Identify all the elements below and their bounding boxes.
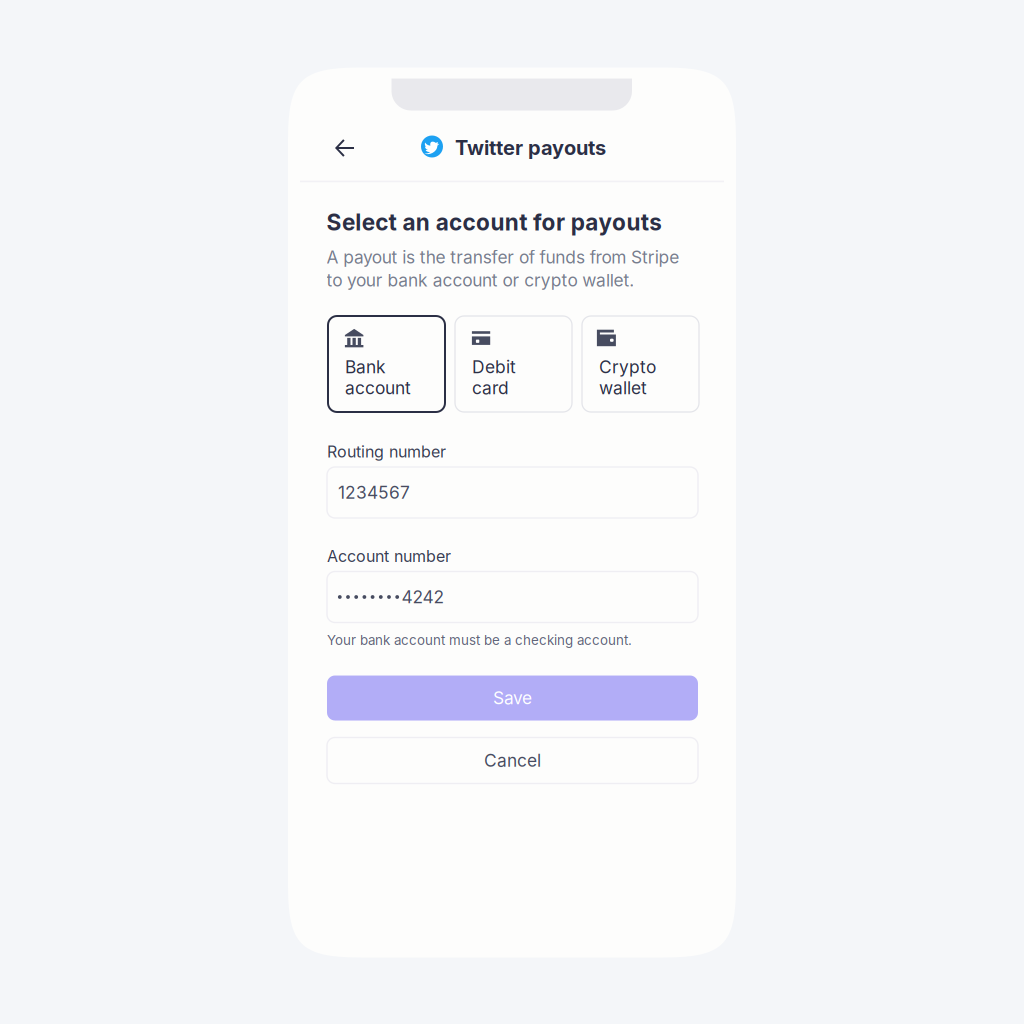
- staticText: Your bank account must be a checking acc…: [327, 632, 632, 648]
- staticText: A payout is the transfer of funds from S…: [326, 247, 679, 268]
- staticText: Bank: [345, 356, 386, 377]
- staticText: Twitter payouts: [455, 136, 606, 160]
- staticText: to your bank account or crypto wallet.: [326, 270, 634, 291]
- staticText: Routing number: [327, 442, 446, 461]
- button[interactable]: Crypto: [582, 316, 699, 412]
- staticText: card: [472, 377, 509, 398]
- staticText: Account number: [327, 546, 451, 566]
- staticText: Save: [493, 687, 532, 708]
- button[interactable]: Bank: [328, 316, 445, 412]
- staticText: Select an account for payouts: [326, 208, 662, 236]
- staticText: Cancel: [484, 750, 541, 771]
- button[interactable]: Back: [322, 126, 366, 170]
- button[interactable]: Debit: [455, 316, 572, 412]
- staticText: Crypto: [599, 356, 656, 377]
- button[interactable]: Cancel: [327, 737, 698, 783]
- staticText: Debit: [472, 356, 516, 377]
- button[interactable]: Save: [327, 675, 698, 720]
- staticText: 4242: [401, 586, 444, 607]
- staticText: account: [345, 377, 411, 398]
- staticText: wallet: [599, 377, 647, 398]
- staticText: 1234567: [338, 482, 410, 503]
